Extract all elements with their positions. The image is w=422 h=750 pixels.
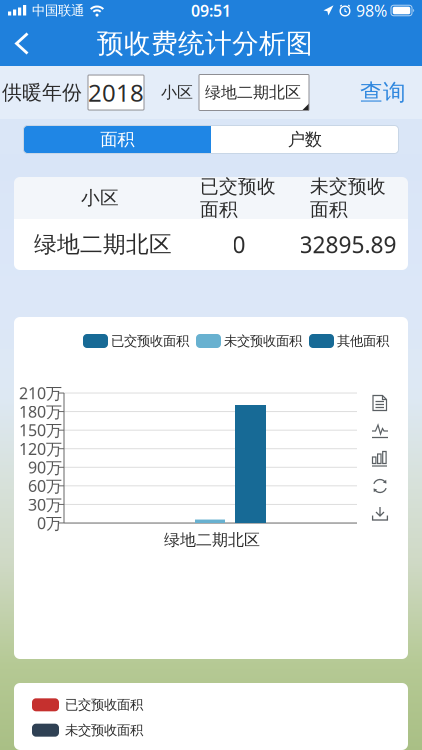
staticText: 09:51 [191, 0, 231, 21]
staticText: 供暖年份 [2, 80, 82, 105]
staticText: 小区 [81, 186, 119, 209]
button[interactable]: 面积 [23, 125, 211, 153]
button[interactable]: 切换为折线图 [371, 423, 388, 439]
staticText: 其他面积 [337, 333, 389, 349]
button[interactable]: 查询 [360, 79, 422, 106]
staticText: 98% [356, 0, 387, 21]
staticText: 查询 [360, 79, 406, 106]
staticText: 已交预收面积 [65, 697, 143, 713]
button[interactable]: 数据视图 [372, 394, 388, 411]
staticText: 中国联通 [32, 2, 84, 19]
staticText: 绿地二期北区 [34, 231, 172, 258]
staticText: 绿地二期北区 [164, 530, 260, 550]
staticText: 0万 [37, 512, 62, 534]
staticText: 已交预收面积 [111, 333, 189, 349]
staticText: 90万 [28, 457, 62, 478]
staticText: 0 [232, 229, 245, 259]
button[interactable]: 切换为柱状图 [372, 451, 388, 467]
staticText: 小区 [161, 83, 193, 102]
staticText: 32895.89 [299, 229, 396, 259]
button[interactable]: 2018 [88, 75, 144, 110]
staticText: 180万 [19, 401, 62, 422]
button[interactable]: 还原 [372, 478, 388, 494]
staticText: 30万 [28, 494, 62, 515]
button[interactable]: 绿地二期北区 [199, 74, 309, 110]
staticText: 未交预收 面积 [310, 175, 386, 221]
staticText: 150万 [19, 419, 62, 441]
staticText: 面积 [100, 129, 134, 150]
staticText: 绿地二期北区 [205, 83, 301, 102]
staticText: 未交预收面积 [65, 722, 143, 738]
staticText: 60万 [28, 475, 62, 496]
staticText: 120万 [19, 438, 62, 459]
button[interactable]: 户数 [211, 125, 398, 153]
staticText: 210万 [19, 382, 62, 404]
staticText: 未交预收面积 [224, 333, 302, 349]
staticText: 已交预收 面积 [200, 175, 276, 221]
button[interactable]: 保存为图片 [372, 506, 388, 521]
staticText: 户数 [288, 129, 322, 150]
staticText: 预收费统计分析图 [97, 27, 313, 60]
staticText: 2018 [88, 77, 144, 108]
button[interactable]: Back [0, 21, 30, 66]
